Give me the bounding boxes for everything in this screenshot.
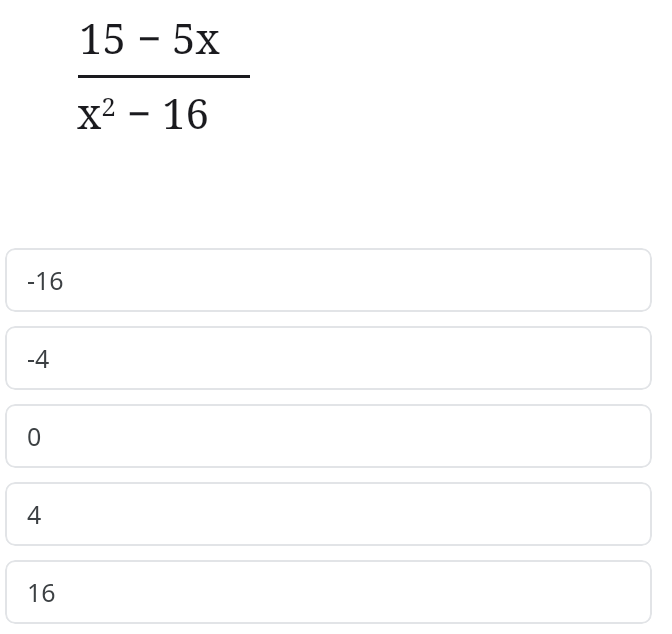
staticText: x2 − 16 [77,84,209,141]
button[interactable]: 0 [5,404,652,468]
staticText: 16 [27,575,56,609]
button[interactable]: -16 [5,248,652,312]
staticText: 15 − 5x [79,9,220,66]
staticText: -16 [27,263,64,297]
staticText: 4 [27,497,42,531]
button[interactable]: 16 [5,560,652,624]
button[interactable]: -4 [5,326,652,390]
staticText: -4 [27,341,50,375]
staticText: 0 [27,419,42,453]
button[interactable]: 4 [5,482,652,546]
